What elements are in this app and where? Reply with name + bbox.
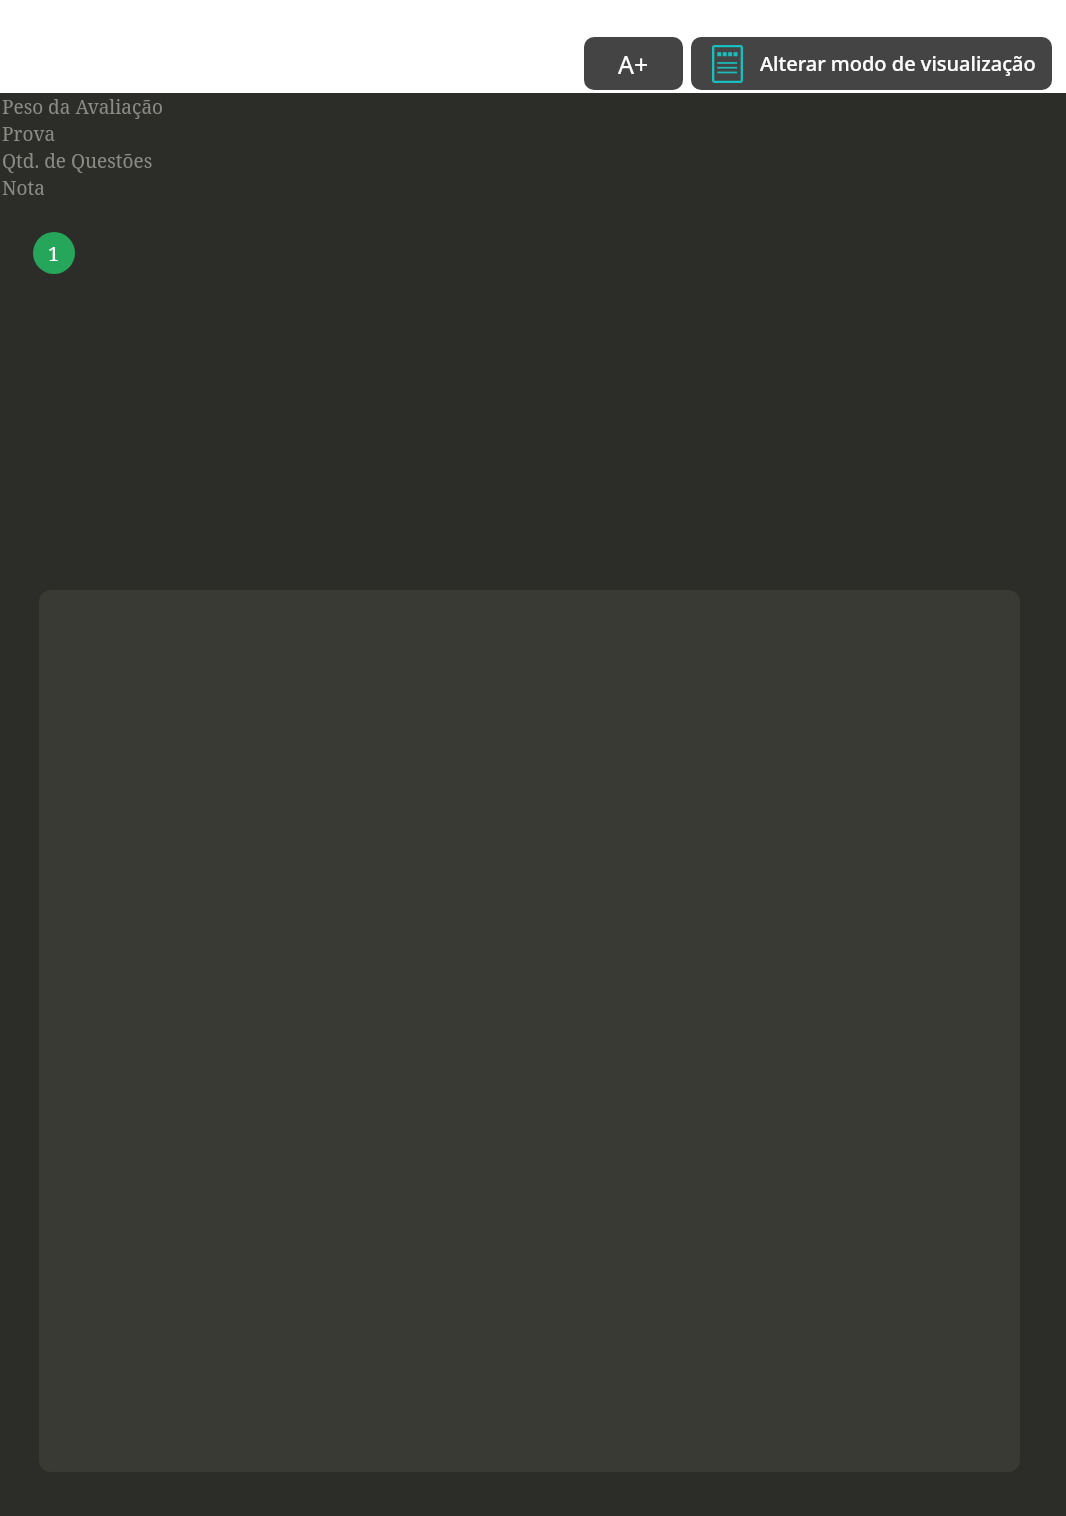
button[interactable]: 1 (0, 200, 1058, 1516)
button[interactable]: Alterar modo de visualização (691, 37, 1052, 90)
staticText: Peso da Avaliação (2, 94, 164, 120)
staticText: A+ (618, 47, 649, 81)
other: Alterar modo de visualização (712, 45, 743, 83)
button[interactable]: A+ (584, 37, 683, 90)
staticText: Qtd. de Questões (2, 148, 153, 174)
staticText: Nota (2, 175, 45, 201)
staticText: Alterar modo de visualização (760, 50, 1036, 77)
staticText: 1 (48, 240, 60, 267)
button[interactable]: 1 (33, 232, 75, 274)
staticText: Prova (2, 121, 56, 147)
